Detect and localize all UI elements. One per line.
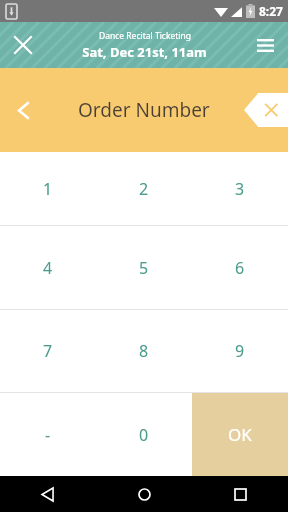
- staticText: 0: [139, 424, 149, 446]
- button[interactable]: Back: [0, 87, 46, 133]
- staticText: 1: [43, 178, 53, 200]
- button[interactable]: Menu: [242, 22, 288, 68]
- button[interactable]: 0: [96, 393, 192, 476]
- staticText: 8:27: [259, 3, 283, 19]
- staticText: 2: [139, 178, 149, 200]
- staticText: -: [45, 424, 51, 446]
- button[interactable]: 8: [96, 310, 192, 392]
- button[interactable]: OK: [192, 393, 288, 476]
- button[interactable]: 5: [96, 226, 192, 309]
- button[interactable]: 3: [192, 152, 288, 225]
- button[interactable]: Close: [0, 22, 46, 68]
- button[interactable]: 4: [0, 226, 96, 309]
- staticText: 4: [43, 257, 53, 279]
- staticText: 9: [235, 340, 245, 362]
- staticText: Sat, Dec 21st, 11am: [82, 43, 207, 61]
- staticText: 7: [43, 340, 53, 362]
- button[interactable]: 6: [192, 226, 288, 309]
- staticText: OK: [228, 423, 252, 446]
- button[interactable]: Backspace: [244, 93, 288, 127]
- button[interactable]: Recent apps: [192, 476, 288, 512]
- button[interactable]: Home: [96, 476, 192, 512]
- button[interactable]: 7: [0, 310, 96, 392]
- staticText: 8: [139, 340, 149, 362]
- staticText: 3: [235, 178, 245, 200]
- staticText: Order Number: [78, 97, 210, 123]
- button[interactable]: 9: [192, 310, 288, 392]
- staticText: Dance Recital Ticketing: [99, 30, 191, 42]
- staticText: 5: [139, 257, 149, 279]
- staticText: 6: [235, 257, 245, 279]
- button[interactable]: 1: [0, 152, 96, 225]
- button[interactable]: 2: [96, 152, 192, 225]
- button[interactable]: Back: [0, 476, 96, 512]
- button[interactable]: -: [0, 393, 96, 476]
